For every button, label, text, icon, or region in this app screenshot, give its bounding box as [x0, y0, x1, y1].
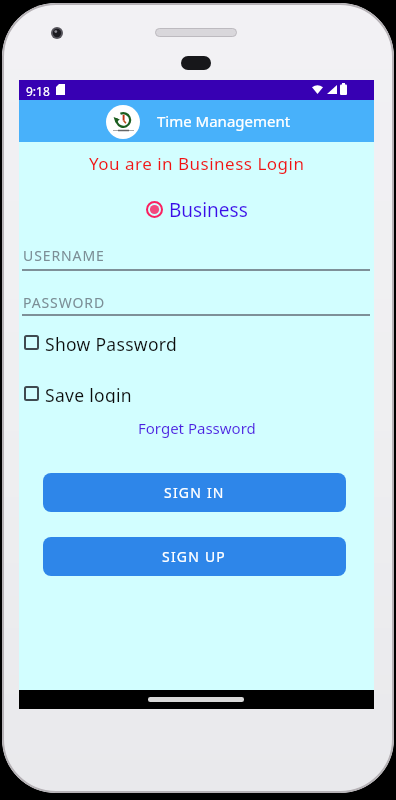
staticText: Time Management: [157, 111, 291, 131]
staticText: Show Password: [45, 332, 178, 352]
staticText: USERNAME: [23, 246, 105, 265]
button[interactable]: Save login: [24, 383, 132, 403]
staticText: 9:18: [26, 83, 50, 99]
staticText: PASSWORD: [23, 293, 106, 312]
staticText: SIGN UP: [162, 547, 227, 566]
button[interactable]: Show Password: [24, 332, 178, 352]
staticText: Business: [169, 197, 248, 221]
staticText: You are in Business Login: [89, 152, 305, 175]
button[interactable]: Forget Password: [138, 418, 256, 438]
button[interactable]: SIGN IN: [43, 473, 346, 512]
staticText: SIGN IN: [164, 483, 225, 502]
staticText: Save login: [45, 383, 132, 403]
button[interactable]: [106, 105, 140, 139]
button[interactable]: SIGN UP: [43, 537, 346, 576]
button[interactable]: Business: [19, 197, 374, 221]
